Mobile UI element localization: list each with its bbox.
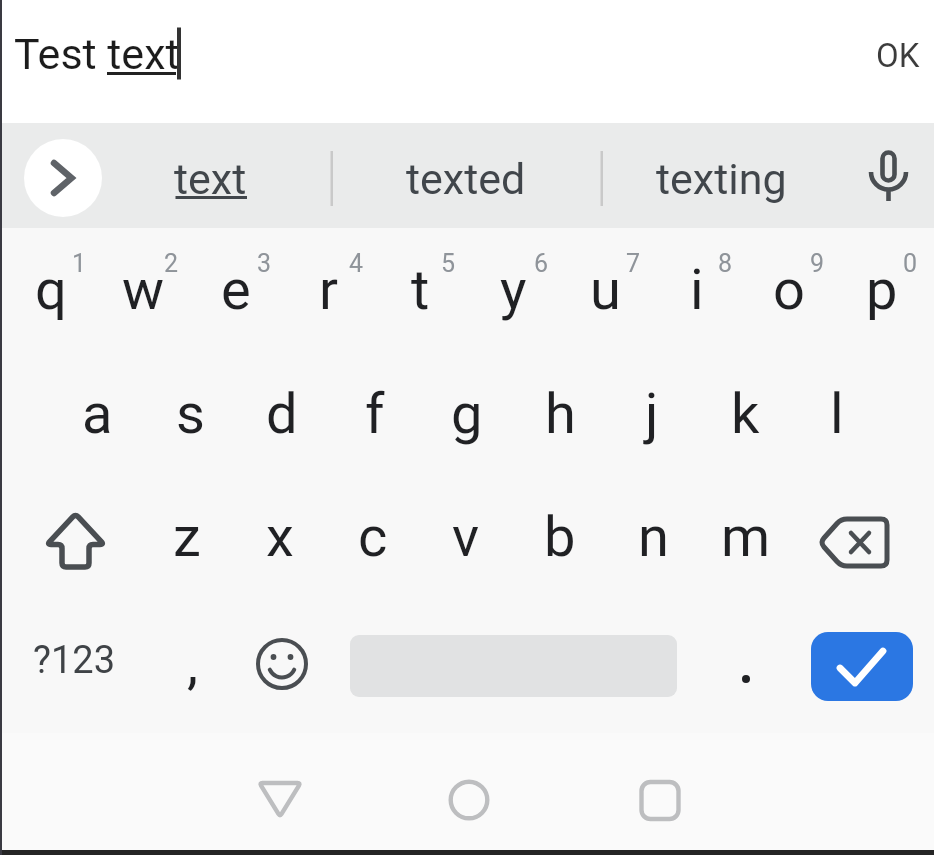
button[interactable]: OK xyxy=(823,10,934,100)
staticText: d xyxy=(266,381,298,447)
staticText: 6 xyxy=(534,249,549,278)
button[interactable]: text xyxy=(135,134,285,224)
staticText: o xyxy=(773,257,805,323)
staticText: 4 xyxy=(349,249,364,278)
staticText: c xyxy=(358,504,388,570)
button[interactable]: m xyxy=(671,492,821,582)
button[interactable] xyxy=(812,506,904,578)
staticText: u xyxy=(590,257,621,323)
button[interactable]: w xyxy=(68,245,218,335)
staticText: 9 xyxy=(810,249,825,278)
button[interactable]: a xyxy=(22,369,172,459)
button[interactable] xyxy=(811,632,913,701)
button[interactable]: p xyxy=(807,245,934,335)
button[interactable]: c xyxy=(298,492,448,582)
staticText: , xyxy=(187,631,199,697)
button[interactable] xyxy=(24,139,102,217)
staticText: g xyxy=(451,381,483,447)
staticText: a xyxy=(82,381,113,447)
button[interactable]: k xyxy=(670,369,820,459)
button[interactable]: f xyxy=(300,369,450,459)
staticText: k xyxy=(731,381,760,447)
staticText: y xyxy=(500,257,527,323)
staticText: m xyxy=(721,504,771,570)
staticText: 1 xyxy=(72,249,87,278)
button[interactable]: n xyxy=(578,492,728,582)
button[interactable] xyxy=(250,772,310,828)
staticText: p xyxy=(866,257,898,323)
button[interactable] xyxy=(40,506,112,578)
staticText: 2 xyxy=(164,249,179,278)
button[interactable]: q xyxy=(0,245,126,335)
staticText: v xyxy=(452,504,480,570)
button[interactable]: e xyxy=(161,245,311,335)
staticText: h xyxy=(545,381,576,447)
button[interactable] xyxy=(252,634,312,694)
button[interactable]: j xyxy=(577,369,727,459)
button[interactable]: l xyxy=(762,369,912,459)
button[interactable]: s xyxy=(115,369,265,459)
staticText: j xyxy=(645,381,659,447)
staticText: 0 xyxy=(903,249,918,278)
staticText: s xyxy=(176,381,205,447)
staticText: Test text xyxy=(14,29,180,79)
staticText: 5 xyxy=(441,249,456,278)
button[interactable]: i xyxy=(622,245,772,335)
staticText: OK xyxy=(876,36,920,75)
button[interactable] xyxy=(439,770,499,830)
staticText: t xyxy=(411,257,430,323)
button[interactable]: v xyxy=(391,492,541,582)
button[interactable]: g xyxy=(392,369,542,459)
button[interactable]: x xyxy=(205,492,355,582)
button[interactable]: u xyxy=(530,245,680,335)
button[interactable] xyxy=(726,646,766,696)
staticText: text xyxy=(174,154,247,204)
staticText: r xyxy=(319,257,338,323)
staticText: 3 xyxy=(257,249,272,278)
button[interactable]: y xyxy=(438,245,588,335)
staticText: l xyxy=(830,381,844,447)
button[interactable] xyxy=(630,770,690,830)
button[interactable]: b xyxy=(485,492,635,582)
staticText: ?123 xyxy=(33,638,116,683)
button[interactable]: , xyxy=(118,619,268,709)
staticText: 8 xyxy=(718,249,733,278)
staticText: texted xyxy=(406,154,526,204)
staticText: n xyxy=(638,504,669,570)
button[interactable]: o xyxy=(714,245,864,335)
staticText: texting xyxy=(656,154,787,204)
staticText: f xyxy=(365,381,385,447)
button[interactable]: d xyxy=(207,369,357,459)
staticText: q xyxy=(35,257,67,323)
button[interactable]: ?123 xyxy=(0,615,149,705)
staticText: i xyxy=(690,257,704,323)
button[interactable] xyxy=(858,140,920,216)
button[interactable]: z xyxy=(112,492,262,582)
button[interactable]: t xyxy=(345,245,495,335)
staticText: 7 xyxy=(626,249,641,278)
button[interactable]: r xyxy=(253,245,403,335)
staticText: w xyxy=(122,257,165,323)
button[interactable]: texting xyxy=(646,134,796,224)
staticText: z xyxy=(173,504,201,570)
staticText: x xyxy=(266,504,294,570)
button[interactable]: texted xyxy=(391,134,541,224)
button[interactable]: h xyxy=(485,369,635,459)
staticText: b xyxy=(544,504,576,570)
staticText: e xyxy=(221,257,251,323)
